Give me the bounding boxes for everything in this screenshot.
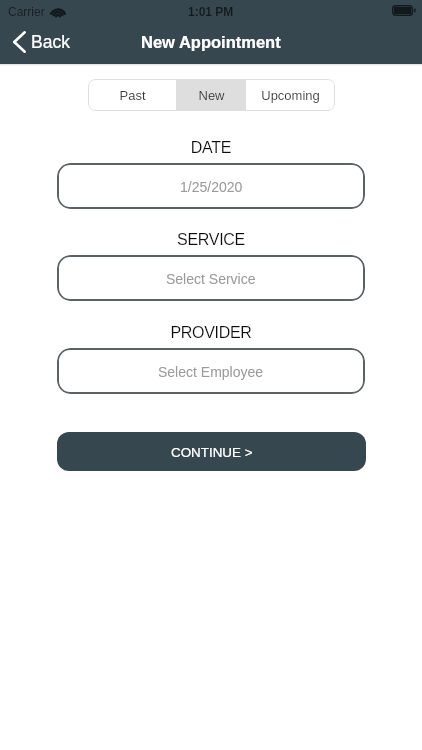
staticText: Back <box>31 32 70 52</box>
button[interactable]: Upcoming <box>246 79 335 111</box>
staticText: New Appointment <box>141 33 281 51</box>
staticText: SERVICE <box>0 231 422 249</box>
button[interactable]: Select Service <box>57 255 365 301</box>
staticText: PROVIDER <box>0 324 422 342</box>
staticText: CONTINUE > <box>171 445 253 460</box>
staticText: Select Employee <box>158 364 264 380</box>
button[interactable]: Back <box>0 21 80 63</box>
button[interactable]: New <box>176 79 246 111</box>
button[interactable]: Past <box>88 79 176 111</box>
staticText: Upcoming <box>261 88 320 103</box>
staticText: 1/25/2020 <box>180 179 243 195</box>
staticText: Past <box>119 88 146 103</box>
other: Back <box>13 31 26 53</box>
staticText: New <box>198 88 225 103</box>
button[interactable]: Select Employee <box>57 348 365 394</box>
staticText: DATE <box>0 139 422 157</box>
button[interactable]: 1/25/2020 <box>57 163 365 209</box>
staticText: Carrier <box>8 5 45 18</box>
staticText: 1:01 PM <box>188 5 234 18</box>
button[interactable]: CONTINUE > <box>57 432 366 471</box>
staticText: Select Service <box>166 271 256 287</box>
